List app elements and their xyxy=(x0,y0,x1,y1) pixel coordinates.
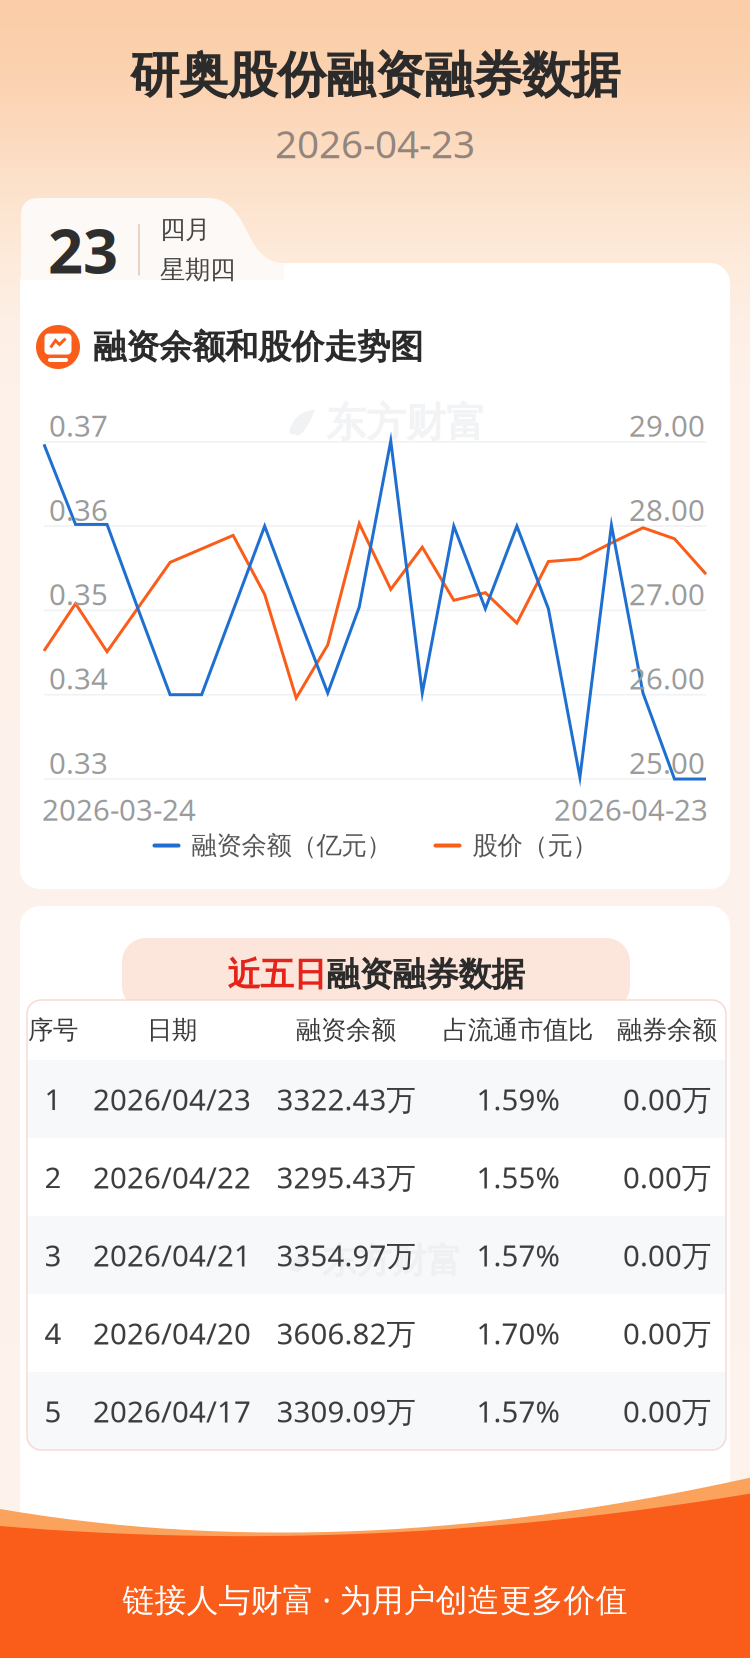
staticText: 融资余额（亿元） xyxy=(191,830,391,861)
staticText: 股价（元） xyxy=(472,830,597,861)
staticText: 星期四 xyxy=(160,254,235,285)
staticText: 0.00万 xyxy=(623,1313,711,1352)
staticText: 27.00 xyxy=(629,574,705,613)
staticText: 26.00 xyxy=(629,659,705,698)
button[interactable]: 融资余额和股价走势图 xyxy=(36,325,423,369)
staticText: 2026/04/17 xyxy=(93,1391,251,1430)
staticText: 2026-03-24 xyxy=(42,790,196,829)
staticText: 3 xyxy=(44,1235,61,1274)
staticText: 链接人与财富 · 为用户创造更多价值 xyxy=(122,1578,627,1620)
staticText: 融资融券数据 xyxy=(326,954,524,995)
staticText: 0.35 xyxy=(49,574,108,613)
staticText: 2026-04-23 xyxy=(275,118,475,169)
staticText: 东方财富 xyxy=(326,398,486,447)
staticText: 融资余额和股价走势图 xyxy=(93,326,423,367)
staticText: 3295.43万 xyxy=(276,1157,415,1196)
staticText: 3322.43万 xyxy=(276,1079,415,1118)
staticText: 占流通市值比 xyxy=(443,1014,593,1045)
staticText: 1 xyxy=(44,1079,61,1118)
staticText: 2026/04/22 xyxy=(93,1157,251,1196)
staticText: 0.34 xyxy=(49,659,108,698)
staticText: 1.57% xyxy=(476,1235,559,1274)
staticText: 1.55% xyxy=(476,1157,559,1196)
button[interactable]: 23 xyxy=(48,209,235,290)
staticText: 3309.09万 xyxy=(276,1391,415,1430)
staticText: 23 xyxy=(48,209,118,290)
staticText: 2026/04/23 xyxy=(93,1079,251,1118)
staticText: 融资余额 xyxy=(296,1014,396,1045)
staticText: 2 xyxy=(44,1157,61,1196)
staticText: 日期 xyxy=(147,1014,197,1045)
staticText: 0.00万 xyxy=(623,1391,711,1430)
staticText: 四月 xyxy=(160,214,210,245)
staticText: 5 xyxy=(44,1391,61,1430)
staticText: 近五日 xyxy=(227,954,326,995)
staticText: 0.00万 xyxy=(623,1157,711,1196)
staticText: 融券余额 xyxy=(617,1014,717,1045)
staticText: 28.00 xyxy=(629,490,705,529)
staticText: 0.00万 xyxy=(623,1235,711,1274)
staticText: 序号 xyxy=(28,1014,78,1045)
staticText: 0.00万 xyxy=(623,1079,711,1118)
staticText: 0.33 xyxy=(49,743,108,782)
staticText: 2026/04/20 xyxy=(93,1313,251,1352)
staticText: 1.70% xyxy=(476,1313,559,1352)
staticText: 29.00 xyxy=(629,406,705,445)
staticText: 4 xyxy=(44,1313,61,1352)
staticText: 1.59% xyxy=(476,1079,559,1118)
staticText: 研奥股份融资融券数据 xyxy=(130,45,620,106)
staticText: 0.37 xyxy=(49,406,108,445)
staticText: 1.57% xyxy=(476,1391,559,1430)
staticText: 2026/04/21 xyxy=(93,1235,251,1274)
staticText: 3354.97万 xyxy=(276,1235,415,1274)
staticText: 25.00 xyxy=(629,743,705,782)
staticText: 0.36 xyxy=(49,490,108,529)
staticText: 东方财富 xyxy=(322,1240,462,1283)
staticText: 2026-04-23 xyxy=(554,790,708,829)
staticText: 3606.82万 xyxy=(276,1313,415,1352)
